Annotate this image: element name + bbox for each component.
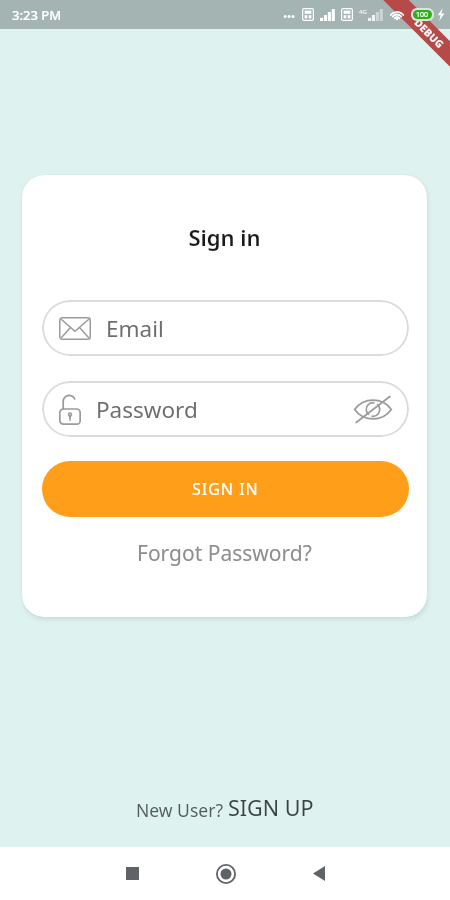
- button[interactable]: Show password: [352, 395, 394, 424]
- button[interactable]: Password: [42, 381, 409, 437]
- staticText: SIGN UP: [228, 793, 314, 822]
- staticText: SIGN IN: [192, 478, 259, 500]
- staticText: DEBUG: [411, 15, 448, 52]
- staticText: 4G: [359, 8, 367, 16]
- button[interactable]: Recents: [86, 847, 179, 900]
- button[interactable]: New User?: [132, 790, 318, 825]
- staticText: 100: [416, 10, 429, 19]
- button[interactable]: Email: [42, 300, 409, 356]
- staticText: New User?: [136, 798, 228, 822]
- staticText: Password: [96, 394, 198, 425]
- staticText: Email: [106, 313, 164, 344]
- staticText: 3:23 PM: [12, 6, 62, 24]
- button[interactable]: Forgot Password?: [131, 535, 318, 572]
- button[interactable]: SIGN IN: [42, 461, 409, 517]
- button[interactable]: Back: [272, 847, 365, 900]
- staticText: Sign in: [22, 222, 427, 252]
- button[interactable]: Home: [179, 847, 272, 900]
